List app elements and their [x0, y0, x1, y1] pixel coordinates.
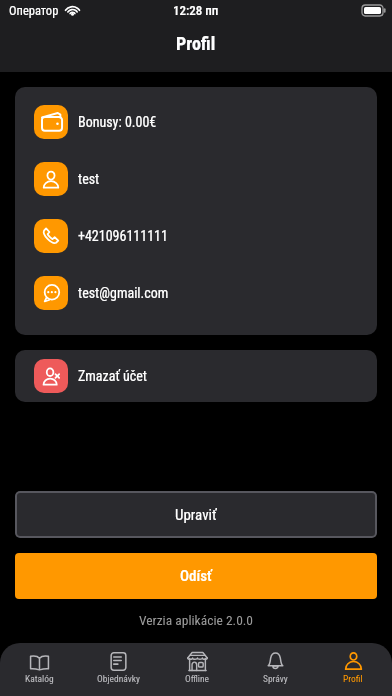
button[interactable]: test — [34, 150, 377, 207]
staticText: test@gmail.com — [78, 285, 169, 301]
staticText: Profil — [176, 33, 216, 54]
staticText: Upraviť — [175, 506, 217, 524]
button[interactable]: Bonusy: 0.00€ — [34, 93, 377, 150]
button[interactable]: Správy — [236, 643, 314, 696]
staticText: Оператор — [9, 3, 59, 18]
button[interactable]: Objednávky — [79, 643, 158, 696]
button[interactable]: Offline — [158, 643, 236, 696]
button[interactable]: Katalóg — [0, 643, 79, 696]
staticText: Odísť — [180, 567, 212, 585]
button[interactable]: +421096111111 — [34, 207, 377, 264]
staticText: Objednávky — [97, 673, 141, 684]
staticText: Bonusy: 0.00€ — [78, 114, 157, 130]
staticText: Katalóg — [25, 673, 54, 684]
staticText: Offline — [185, 673, 210, 684]
staticText: Správy — [263, 673, 288, 684]
staticText: +421096111111 — [78, 228, 168, 244]
staticText: Verzia aplikácie 2.0.0 — [0, 612, 392, 628]
button[interactable]: Odísť — [15, 553, 377, 599]
button[interactable]: Upraviť — [15, 491, 377, 538]
staticText: Zmazať účet — [78, 368, 147, 384]
button[interactable]: test@gmail.com — [34, 264, 377, 321]
staticText: 12:28 пп — [173, 3, 219, 18]
staticText: test — [78, 171, 100, 187]
button[interactable]: Profil — [314, 643, 392, 696]
button[interactable]: Zmazať účet — [15, 350, 377, 402]
staticText: Profil — [343, 673, 363, 684]
